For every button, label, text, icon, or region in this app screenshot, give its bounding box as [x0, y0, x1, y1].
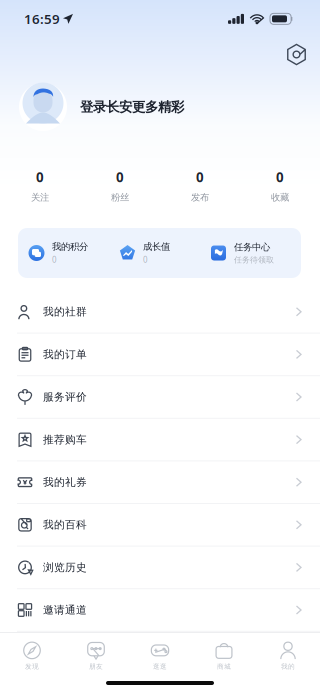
staticText: 收藏: [271, 192, 289, 203]
button[interactable]: 我的积分: [28, 241, 119, 265]
button[interactable]: 商城: [192, 634, 256, 678]
button[interactable]: 登录长安更多精彩: [67, 91, 192, 123]
staticText: 登录长安更多精彩: [80, 99, 184, 115]
staticText: 朋友: [89, 662, 103, 671]
staticText: 任务待领取: [234, 255, 274, 265]
staticText: 推荐购车: [43, 433, 87, 446]
staticText: 我的: [281, 662, 295, 671]
staticText: 我的百科: [43, 518, 87, 531]
staticText: 0: [116, 168, 124, 186]
staticText: 发布: [191, 192, 209, 203]
staticText: 我的礼券: [43, 476, 87, 489]
staticText: 任务中心: [234, 241, 270, 253]
button[interactable]: 我的订单: [0, 334, 320, 376]
staticText: 关注: [31, 192, 49, 203]
staticText: 服务评价: [43, 390, 87, 403]
staticText: 我的订单: [43, 348, 87, 361]
button[interactable]: 逛逛: [128, 634, 192, 678]
staticText: 0: [52, 254, 57, 265]
button[interactable]: 我的: [256, 634, 320, 678]
staticText: 0: [276, 168, 284, 186]
staticText: 浏览历史: [43, 561, 87, 574]
staticText: 发现: [25, 662, 39, 671]
button[interactable]: 邀请通道: [0, 589, 320, 632]
button[interactable]: 头像: [19, 83, 67, 131]
button[interactable]: 推荐购车: [0, 419, 320, 461]
staticText: 商城: [217, 662, 231, 671]
staticText: 0: [36, 168, 44, 186]
button[interactable]: 设置: [279, 44, 314, 76]
button[interactable]: 浏览历史: [0, 547, 320, 589]
button[interactable]: 我的礼券: [0, 461, 320, 504]
button[interactable]: 我的社群: [0, 291, 320, 334]
button[interactable]: 0: [0, 138, 80, 210]
staticText: 成长值: [143, 241, 170, 252]
staticText: 粉丝: [111, 192, 129, 203]
button[interactable]: 0: [160, 138, 240, 210]
staticText: 0: [143, 254, 148, 265]
button[interactable]: 0: [80, 138, 160, 210]
staticText: 0: [196, 168, 204, 186]
button[interactable]: 朋友: [64, 634, 128, 678]
button[interactable]: 任务中心: [210, 241, 301, 265]
button[interactable]: 0: [240, 138, 320, 210]
button[interactable]: 服务评价: [0, 376, 320, 419]
staticText: 我的社群: [43, 305, 87, 318]
staticText: 邀请通道: [43, 603, 87, 616]
staticText: 16:59: [24, 10, 60, 28]
button[interactable]: 发现: [0, 634, 64, 678]
staticText: 我的积分: [52, 241, 88, 252]
button[interactable]: 成长值: [119, 241, 210, 265]
button[interactable]: 我的百科: [0, 504, 320, 547]
staticText: 逛逛: [153, 662, 167, 671]
